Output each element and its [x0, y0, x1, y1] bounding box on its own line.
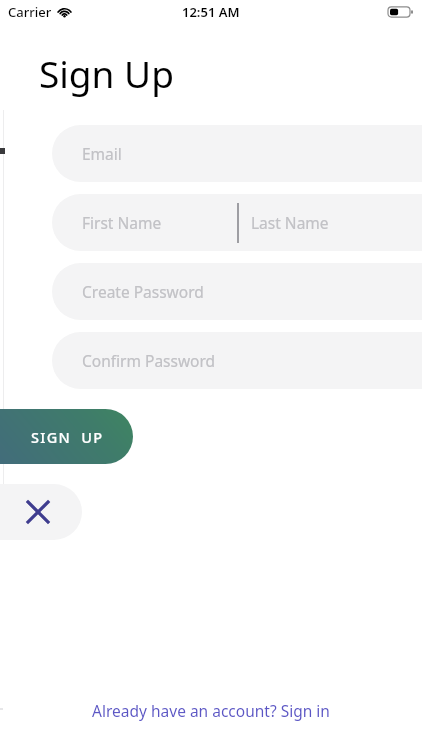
- staticText: Sign Up: [39, 48, 174, 98]
- staticText: Already have an account? Sign in: [92, 700, 330, 721]
- button[interactable]: Create Password: [52, 263, 422, 320]
- button[interactable]: Close: [0, 484, 82, 540]
- staticText: Confirm Password: [82, 350, 216, 371]
- button[interactable]: Email: [52, 125, 422, 182]
- staticText: Last Name: [251, 212, 329, 233]
- staticText: Create Password: [82, 281, 204, 302]
- button[interactable]: SIGN UP: [0, 409, 133, 464]
- staticText: 12:51 AM: [182, 3, 240, 21]
- staticText: Email: [82, 143, 122, 164]
- button[interactable]: Already have an account? Sign in: [0, 696, 422, 724]
- staticText: SIGN UP: [31, 427, 104, 447]
- staticText: First Name: [82, 212, 162, 233]
- button[interactable]: Confirm Password: [52, 332, 422, 389]
- staticText: Carrier: [8, 3, 52, 21]
- button[interactable]: First Name: [52, 194, 422, 251]
